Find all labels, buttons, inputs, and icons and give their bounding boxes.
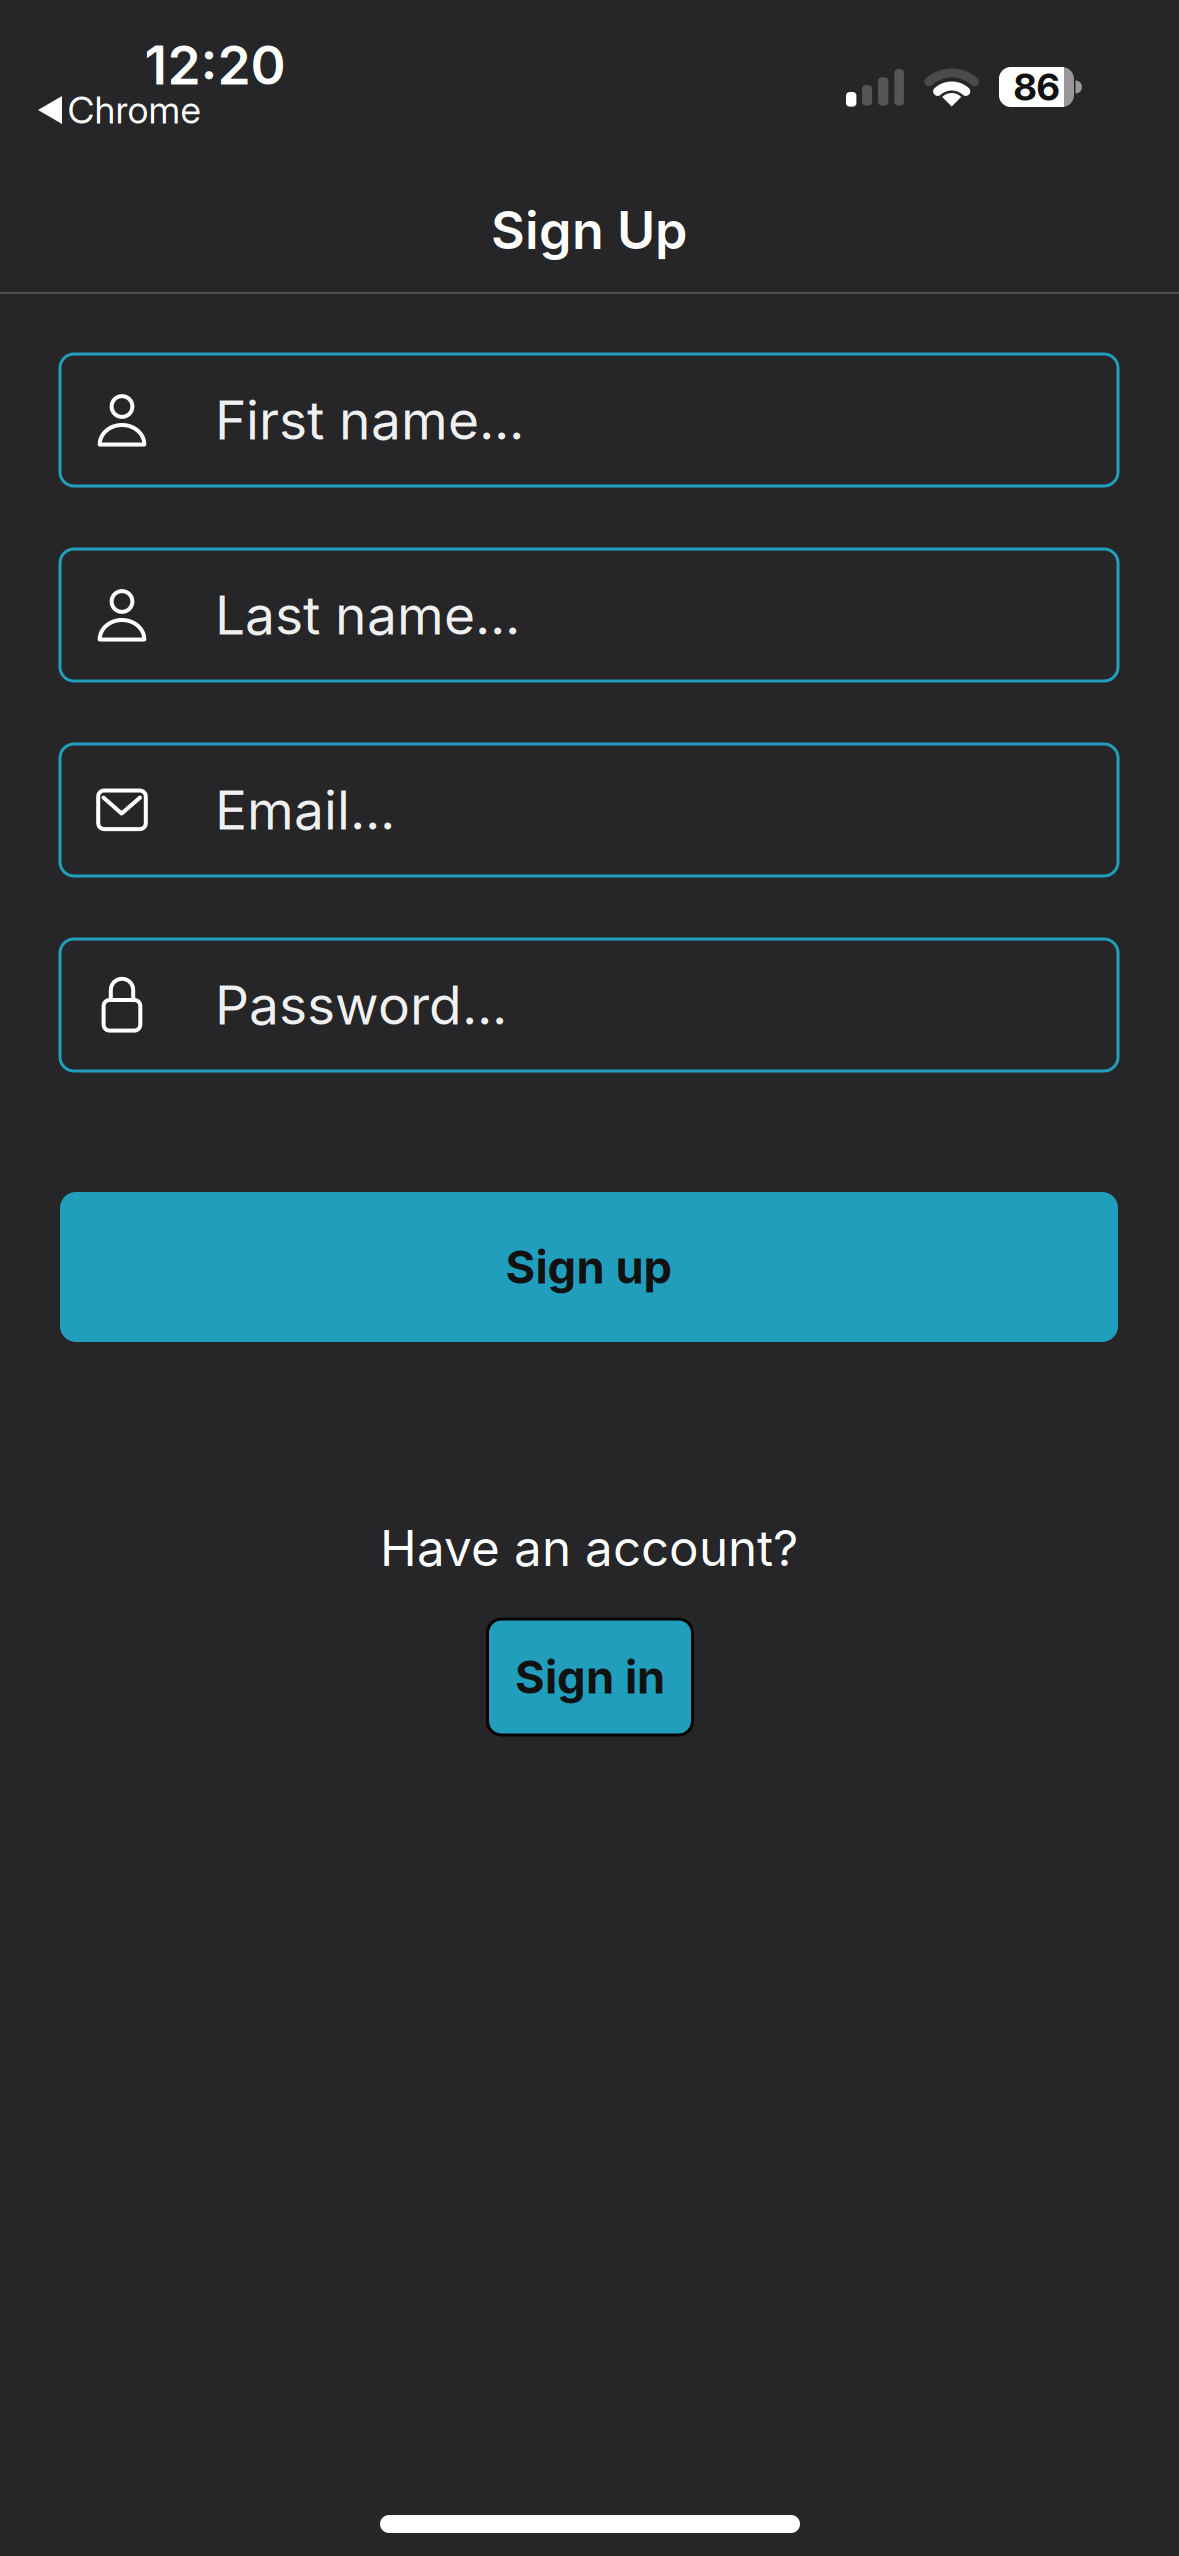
staticText: Email... bbox=[215, 778, 395, 841]
staticText: 12:20 bbox=[144, 33, 285, 96]
staticText: Sign Up bbox=[491, 199, 687, 261]
button[interactable]: Email... bbox=[60, 744, 1118, 876]
button[interactable]: Sign in bbox=[487, 1619, 692, 1735]
button[interactable]: Last name... bbox=[60, 549, 1118, 681]
button[interactable]: Sign up bbox=[60, 1192, 1118, 1342]
staticText: Password... bbox=[215, 973, 507, 1036]
staticText: Sign in bbox=[515, 1650, 665, 1704]
staticText: Last name... bbox=[215, 583, 520, 646]
staticText: Sign up bbox=[505, 1240, 672, 1294]
button[interactable]: First name... bbox=[60, 354, 1118, 486]
staticText: 86 bbox=[1013, 65, 1059, 109]
staticText: Have an account? bbox=[380, 1519, 798, 1577]
button[interactable]: Password... bbox=[60, 939, 1118, 1071]
staticText: First name... bbox=[215, 388, 524, 451]
staticText: Chrome bbox=[67, 88, 200, 132]
